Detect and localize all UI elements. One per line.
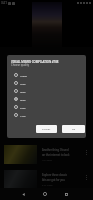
staticText: Choose quality <box>11 63 30 67</box>
staticText: 3:21 <box>1 1 7 5</box>
staticText: CANCEL <box>42 128 51 131</box>
button[interactable]: More options <box>83 170 90 189</box>
button[interactable]: Back <box>17 188 29 200</box>
button[interactable]: 720p <box>7 79 86 87</box>
button[interactable]: More options <box>83 145 90 164</box>
staticText: 8.4K views <box>42 184 53 187</box>
staticText: 1080p <box>20 74 27 77</box>
button[interactable]: 360p <box>7 95 86 103</box>
staticText: on the internet to look <box>42 153 70 157</box>
button[interactable]: 144p <box>7 111 86 119</box>
staticText: 360p <box>20 98 26 101</box>
button[interactable]: Home <box>39 188 51 200</box>
staticText: 144p <box>20 114 26 117</box>
staticText: Explore these classic <box>42 173 67 177</box>
staticText: 480p <box>20 90 26 93</box>
staticText: OK <box>72 128 76 131</box>
button[interactable]: 240p <box>7 103 86 111</box>
staticText: 720p <box>20 82 26 85</box>
staticText: 240p <box>20 106 26 109</box>
button[interactable]: Recent apps <box>60 188 72 200</box>
button[interactable]: OK <box>62 125 85 133</box>
staticText: Another thing I found <box>42 148 69 152</box>
button[interactable]: Another thing I found <box>0 145 93 164</box>
staticText: 12K views <box>42 159 53 162</box>
button[interactable]: 480p <box>7 87 86 95</box>
button[interactable]: Explore these classic <box>0 170 93 189</box>
staticText: VISUAL MEMES COMPILATION #788 <box>11 60 59 64</box>
button[interactable]: 1080p <box>7 71 86 79</box>
button[interactable]: CANCEL <box>36 125 57 133</box>
staticText: bits we got for you <box>42 178 65 182</box>
